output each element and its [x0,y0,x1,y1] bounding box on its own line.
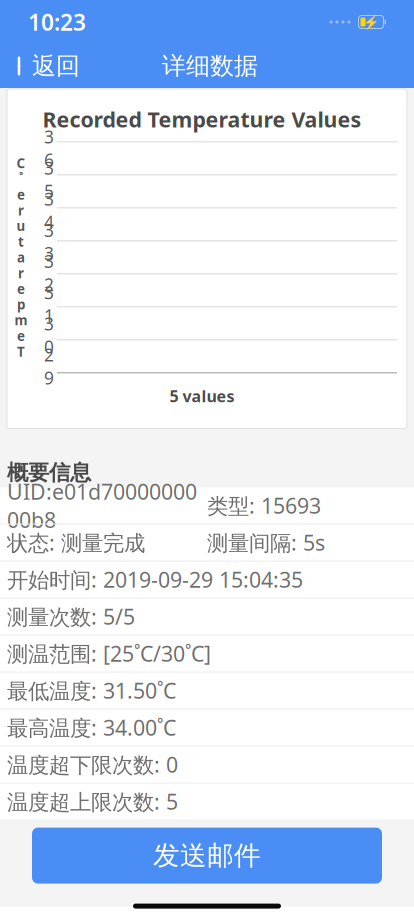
staticText: 10:23 [28,7,86,37]
staticText: 35 [44,156,54,202]
staticText: T [17,343,25,360]
staticText: 30 [44,312,54,358]
staticText: 类型: 15693 [207,491,321,520]
staticText: 详细数据 [162,51,258,81]
staticText: r [18,201,24,219]
staticText: a [17,248,25,266]
staticText: u [16,217,25,235]
staticText: p [17,296,25,313]
staticText: 概要信息 [7,459,91,486]
staticText: C [16,154,25,172]
staticText: 温度超上限次数: 5 [7,787,178,816]
staticText: 33 [44,219,54,265]
staticText: 29 [44,343,54,389]
staticText: m [14,311,27,329]
staticText: 31 [44,281,54,327]
staticText: 测温范围: [25˚C/30˚C] [7,639,211,668]
staticText: 最低温度: 31.50˚C [7,676,176,705]
button[interactable]: 发送邮件 [32,828,382,884]
staticText: 温度超下限次数: 0 [7,750,178,779]
staticText: 开始时间: 2019-09-29 15:04:35 [7,565,303,594]
staticText: ⚡ [362,14,379,30]
staticText: 34 [44,188,54,234]
staticText: ˚ [19,170,23,188]
staticText: 返回 [32,51,80,81]
staticText: 测量次数: 5/5 [7,602,135,631]
staticText: Recorded Temperature Values [42,105,361,133]
staticText: 发送邮件 [153,839,261,872]
button[interactable]: 返回 [0,46,92,86]
staticText: 测量间隔: 5s [207,528,325,557]
staticText: 32 [44,250,54,296]
staticText: e [17,186,25,203]
staticText: t [18,233,24,250]
staticText: 状态: 测量完成 [7,528,145,557]
staticText: UID:e01d7000000000b8 [7,477,197,534]
staticText: r [18,264,24,282]
staticText: 5 values [169,385,234,406]
staticText: 36 [44,125,54,171]
staticText: e [17,327,25,345]
staticText: e [17,280,25,298]
staticText: 最高温度: 34.00˚C [7,713,176,742]
